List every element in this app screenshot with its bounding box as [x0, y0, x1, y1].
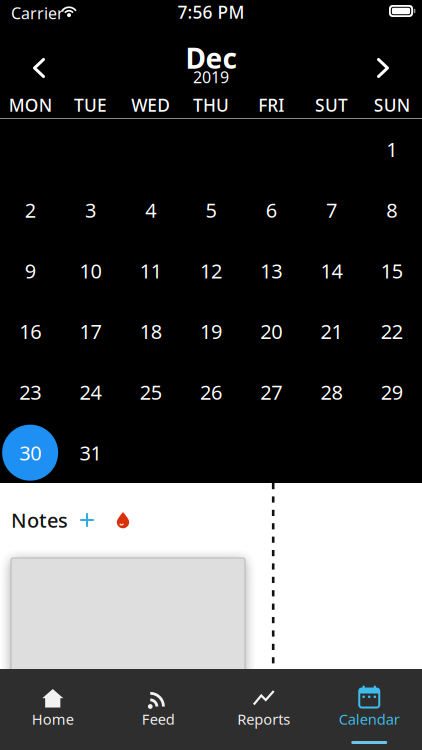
button[interactable]: Home: [0, 669, 105, 750]
staticText: 26: [200, 379, 222, 405]
button[interactable]: 2: [0, 180, 60, 240]
button[interactable]: 26: [181, 362, 241, 422]
button[interactable]: 17: [60, 301, 121, 362]
button[interactable]: 8: [362, 180, 422, 240]
staticText: 29: [381, 379, 403, 405]
button[interactable]: 19: [181, 301, 241, 362]
staticText: 13: [260, 257, 282, 284]
button[interactable]: Calendar: [316, 669, 422, 750]
staticText: Dec: [185, 39, 236, 77]
button[interactable]: 25: [121, 362, 181, 422]
staticText: 24: [79, 379, 101, 405]
staticText: Notes: [11, 507, 68, 533]
button[interactable]: 24: [60, 362, 121, 422]
button[interactable]: 14: [301, 240, 362, 301]
button[interactable]: 30: [0, 422, 60, 483]
button[interactable]: 21: [301, 301, 362, 362]
button[interactable]: Reports: [211, 669, 316, 750]
staticText: Feed: [142, 709, 175, 729]
staticText: 16: [19, 318, 41, 345]
staticText: Carrier: [11, 2, 64, 24]
button[interactable]: 11: [121, 240, 181, 301]
staticText: Home: [32, 709, 74, 729]
button[interactable]: 3: [60, 180, 121, 240]
staticText: 4: [145, 197, 156, 223]
staticText: 20: [260, 318, 282, 345]
staticText: 3: [85, 197, 96, 223]
staticText: 31: [79, 439, 101, 466]
button[interactable]: 12: [181, 240, 241, 301]
button[interactable]: 31: [60, 422, 121, 483]
staticText: FRI: [258, 93, 284, 116]
staticText: 15: [381, 257, 403, 284]
staticText: Reports: [237, 709, 290, 729]
button[interactable]: 23: [0, 362, 60, 422]
button[interactable]: Feed: [105, 669, 211, 750]
button[interactable]: 22: [362, 301, 422, 362]
staticText: 22: [381, 318, 403, 345]
staticText: 30: [19, 439, 41, 466]
staticText: 23: [19, 379, 41, 405]
button[interactable]: 16: [0, 301, 60, 362]
button[interactable]: 10: [60, 240, 121, 301]
staticText: 5: [205, 197, 216, 223]
staticText: 11: [140, 257, 162, 284]
staticText: 7:56 PM: [177, 0, 244, 23]
staticText: Calendar: [339, 709, 400, 729]
staticText: 14: [321, 257, 343, 284]
button[interactable]: 9: [0, 240, 60, 301]
button[interactable]: 15: [362, 240, 422, 301]
button[interactable]: 20: [241, 301, 301, 362]
staticText: 10: [79, 257, 101, 284]
staticText: 9: [25, 257, 36, 284]
staticText: 19: [200, 318, 222, 345]
staticText: 17: [79, 318, 101, 345]
staticText: 2: [25, 197, 36, 223]
staticText: 2019: [193, 66, 229, 88]
button[interactable]: Previous month: [13, 45, 65, 91]
button[interactable]: 1: [362, 119, 422, 180]
staticText: 21: [321, 318, 343, 345]
staticText: TUE: [74, 93, 107, 116]
staticText: SUN: [374, 93, 410, 116]
button[interactable]: 18: [121, 301, 181, 362]
staticText: 1: [386, 136, 397, 163]
button[interactable]: Period tracker: [105, 505, 141, 535]
staticText: 18: [140, 318, 162, 345]
staticText: SUT: [315, 93, 348, 116]
staticText: 6: [266, 197, 277, 223]
staticText: 12: [200, 257, 222, 284]
staticText: 28: [321, 379, 343, 405]
staticText: WED: [131, 93, 170, 116]
staticText: THU: [193, 93, 229, 116]
button[interactable]: 7: [301, 180, 362, 240]
staticText: 7: [326, 197, 337, 223]
button[interactable]: 27: [241, 362, 301, 422]
button[interactable]: 28: [301, 362, 362, 422]
staticText: 8: [386, 197, 397, 223]
staticText: 25: [140, 379, 162, 405]
button[interactable]: 6: [241, 180, 301, 240]
button[interactable]: 29: [362, 362, 422, 422]
button[interactable]: 13: [241, 240, 301, 301]
button[interactable]: Next month: [357, 45, 409, 91]
button[interactable]: Add note: [69, 505, 105, 535]
button[interactable]: 4: [121, 180, 181, 240]
button[interactable]: 5: [181, 180, 241, 240]
staticText: MON: [9, 93, 52, 116]
staticText: 27: [260, 379, 282, 405]
